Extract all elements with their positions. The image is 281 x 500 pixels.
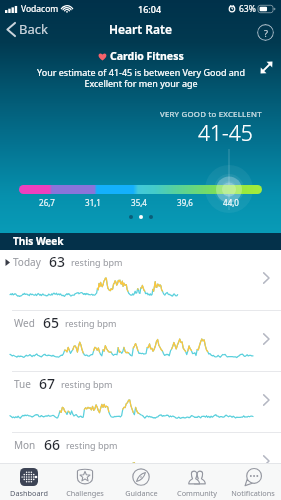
staticText: Tue — [14, 377, 31, 391]
staticText: Vodacom — [21, 3, 59, 15]
staticText: resting bpm — [61, 378, 113, 390]
staticText: 26,7 — [36, 197, 58, 208]
button[interactable]: Guidance — [113, 464, 169, 500]
staticText: Wed — [14, 316, 35, 330]
staticText: 44,0 — [220, 197, 242, 208]
button[interactable]: Today — [0, 250, 281, 311]
staticText: 16:04 — [138, 3, 162, 15]
staticText: This Week — [13, 234, 64, 248]
staticText: 63% — [239, 3, 256, 15]
staticText: 66 — [44, 435, 61, 454]
staticText: Mon — [14, 438, 36, 452]
button[interactable]: Community — [169, 464, 225, 500]
button[interactable]: Mon — [0, 433, 281, 494]
button[interactable]: Expand — [255, 56, 277, 78]
staticText: Community — [177, 488, 217, 498]
staticText: Heart Rate — [109, 21, 172, 37]
staticText: 35,4 — [128, 197, 150, 208]
staticText: Today — [13, 255, 41, 269]
staticText: 39,6 — [174, 197, 196, 208]
staticText: 63 — [49, 252, 66, 271]
staticText: resting bpm — [71, 256, 123, 268]
button[interactable]: Tue — [0, 372, 281, 433]
staticText: 41-45 — [198, 119, 253, 148]
staticText: 67 — [39, 374, 56, 393]
staticText: Back — [19, 20, 48, 38]
button[interactable]: Help — [257, 24, 274, 41]
button[interactable]: Challenges — [57, 464, 113, 500]
staticText: Your estimate of 41-45 is between Very G… — [37, 66, 245, 90]
staticText: 65 — [43, 313, 60, 332]
staticText: Challenges — [66, 488, 104, 498]
staticText: Guidance — [125, 488, 158, 498]
staticText: resting bpm — [66, 439, 118, 451]
button[interactable]: Back — [0, 17, 56, 41]
staticText: resting bpm — [65, 317, 117, 329]
button[interactable]: Wed — [0, 311, 281, 372]
staticText: ? — [264, 27, 268, 39]
button[interactable]: Notifications — [225, 464, 281, 500]
staticText: Cardio Fitness — [110, 49, 184, 63]
staticText: VERY GOOD to EXCELLENT — [160, 109, 262, 120]
staticText: 31,1 — [82, 197, 104, 208]
button[interactable]: Dashboard — [0, 464, 57, 500]
staticText: Notifications — [231, 488, 275, 498]
staticText: Dashboard — [10, 488, 48, 498]
